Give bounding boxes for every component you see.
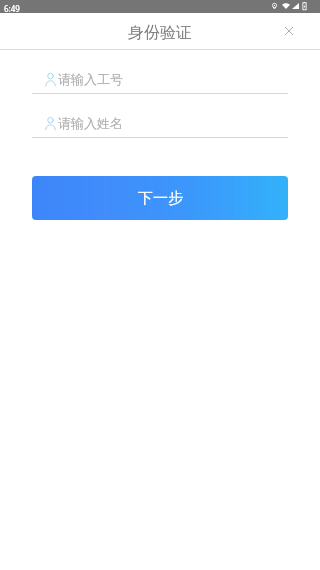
button[interactable] [32, 56, 288, 90]
staticText: 请输入工号 [58, 71, 123, 87]
staticText: 身份验证 [128, 23, 192, 43]
button[interactable]: 下一步 [32, 176, 288, 220]
button[interactable]: Close [272, 16, 304, 48]
staticText: 请输入姓名 [58, 115, 123, 131]
button[interactable] [32, 100, 288, 134]
staticText: 6:49 [4, 3, 20, 14]
staticText: 下一步 [138, 189, 183, 208]
